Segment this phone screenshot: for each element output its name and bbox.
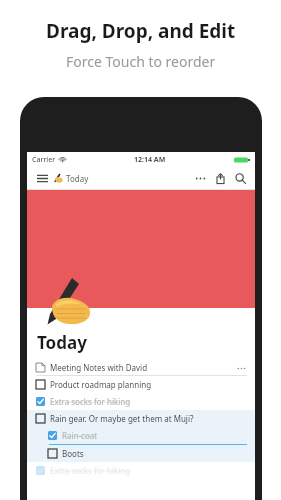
staticText: Product roadmap planning [50, 379, 152, 390]
button[interactable]: Rain gear. Or maybe get them at Muji? [27, 410, 255, 427]
staticText: Today [37, 331, 87, 354]
staticText: Rain-coat [62, 430, 98, 441]
button[interactable]: Share [212, 170, 228, 186]
button[interactable]: Boots [27, 445, 255, 462]
staticText: Extra socks for hiking [50, 396, 131, 407]
staticText: 12:14 AM [134, 155, 166, 165]
staticText: Extra socks for hiking [50, 465, 131, 476]
staticText: Drag, Drop, and Edit [46, 18, 236, 44]
staticText: Rain gear. Or maybe get them at Muji? [50, 413, 194, 424]
button[interactable]: Product roadmap planning [27, 376, 255, 393]
staticText: Carrier [32, 155, 56, 165]
button[interactable]: Meeting Notes with David [27, 359, 255, 376]
staticText: Boots [62, 448, 84, 459]
button[interactable]: Row options [235, 362, 247, 374]
button[interactable]: More options [192, 170, 208, 186]
button[interactable]: Extra socks for hiking [27, 462, 255, 479]
button[interactable]: Extra socks for hiking [27, 393, 255, 410]
button[interactable]: Menu [34, 170, 50, 186]
staticText: Today [66, 173, 89, 184]
button[interactable]: Search [232, 170, 248, 186]
staticText: Force Touch to reorder [66, 52, 216, 71]
staticText: Meeting Notes with David [50, 362, 148, 373]
button[interactable]: Rain-coat [27, 427, 255, 444]
